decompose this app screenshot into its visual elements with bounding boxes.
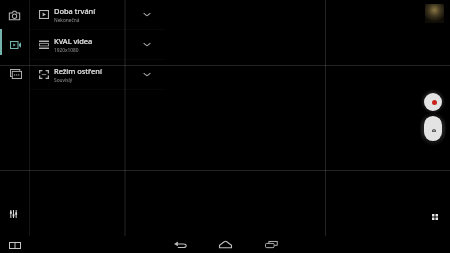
staticText: Souvislý: [54, 77, 73, 84]
button[interactable]: KVAL videa: [29, 30, 165, 59]
button[interactable]: Gallery: [425, 4, 444, 23]
button[interactable]: Home: [207, 236, 243, 253]
button[interactable]: More modes: [0, 59, 29, 89]
button[interactable]: Doba trvání: [29, 0, 165, 29]
button[interactable]: Settings: [5, 206, 21, 222]
staticText: KVAL videa: [54, 36, 93, 46]
button[interactable]: Toggle grid: [427, 209, 442, 224]
button[interactable]: Video mode: [0, 30, 29, 60]
button[interactable]: Record video: [424, 93, 442, 111]
staticText: Nekonečná: [54, 17, 80, 24]
button[interactable]: Režim ostření: [29, 60, 165, 89]
staticText: Doba trvání: [54, 6, 96, 16]
button[interactable]: Split screen: [4, 236, 25, 253]
button[interactable]: Photo mode: [0, 0, 29, 30]
staticText: 1920x1080: [54, 47, 79, 54]
button[interactable]: Recent apps: [253, 236, 289, 253]
button[interactable]: Back: [162, 236, 198, 253]
staticText: Režim ostření: [54, 66, 102, 76]
button[interactable]: Take photo: [424, 116, 442, 141]
